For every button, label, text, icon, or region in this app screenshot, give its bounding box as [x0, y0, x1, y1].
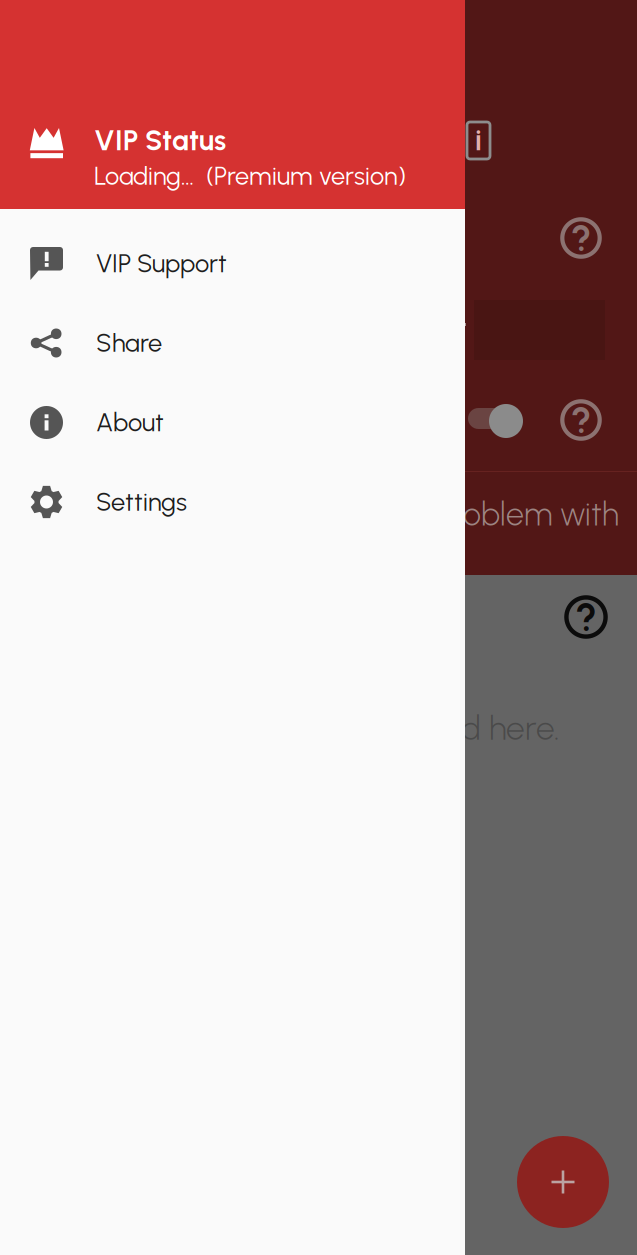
staticText: Loading… (Premium version)	[94, 161, 406, 191]
button[interactable]: About	[0, 383, 465, 462]
staticText: VIP Status	[94, 124, 226, 157]
staticText: d here.	[461, 708, 560, 748]
button[interactable]: Share	[0, 303, 465, 383]
button[interactable]: VIP Support	[0, 224, 465, 303]
staticText: ?	[571, 216, 591, 260]
staticText: ?	[571, 398, 591, 442]
button[interactable]: Settings	[0, 462, 465, 542]
staticText: Share	[96, 328, 162, 358]
staticText: About	[96, 407, 164, 438]
staticText: ?	[575, 594, 596, 640]
staticText: oblem with	[463, 495, 619, 533]
staticText: Settings	[96, 487, 187, 517]
staticText: VIP Support	[96, 248, 227, 279]
staticText: i	[475, 124, 482, 157]
